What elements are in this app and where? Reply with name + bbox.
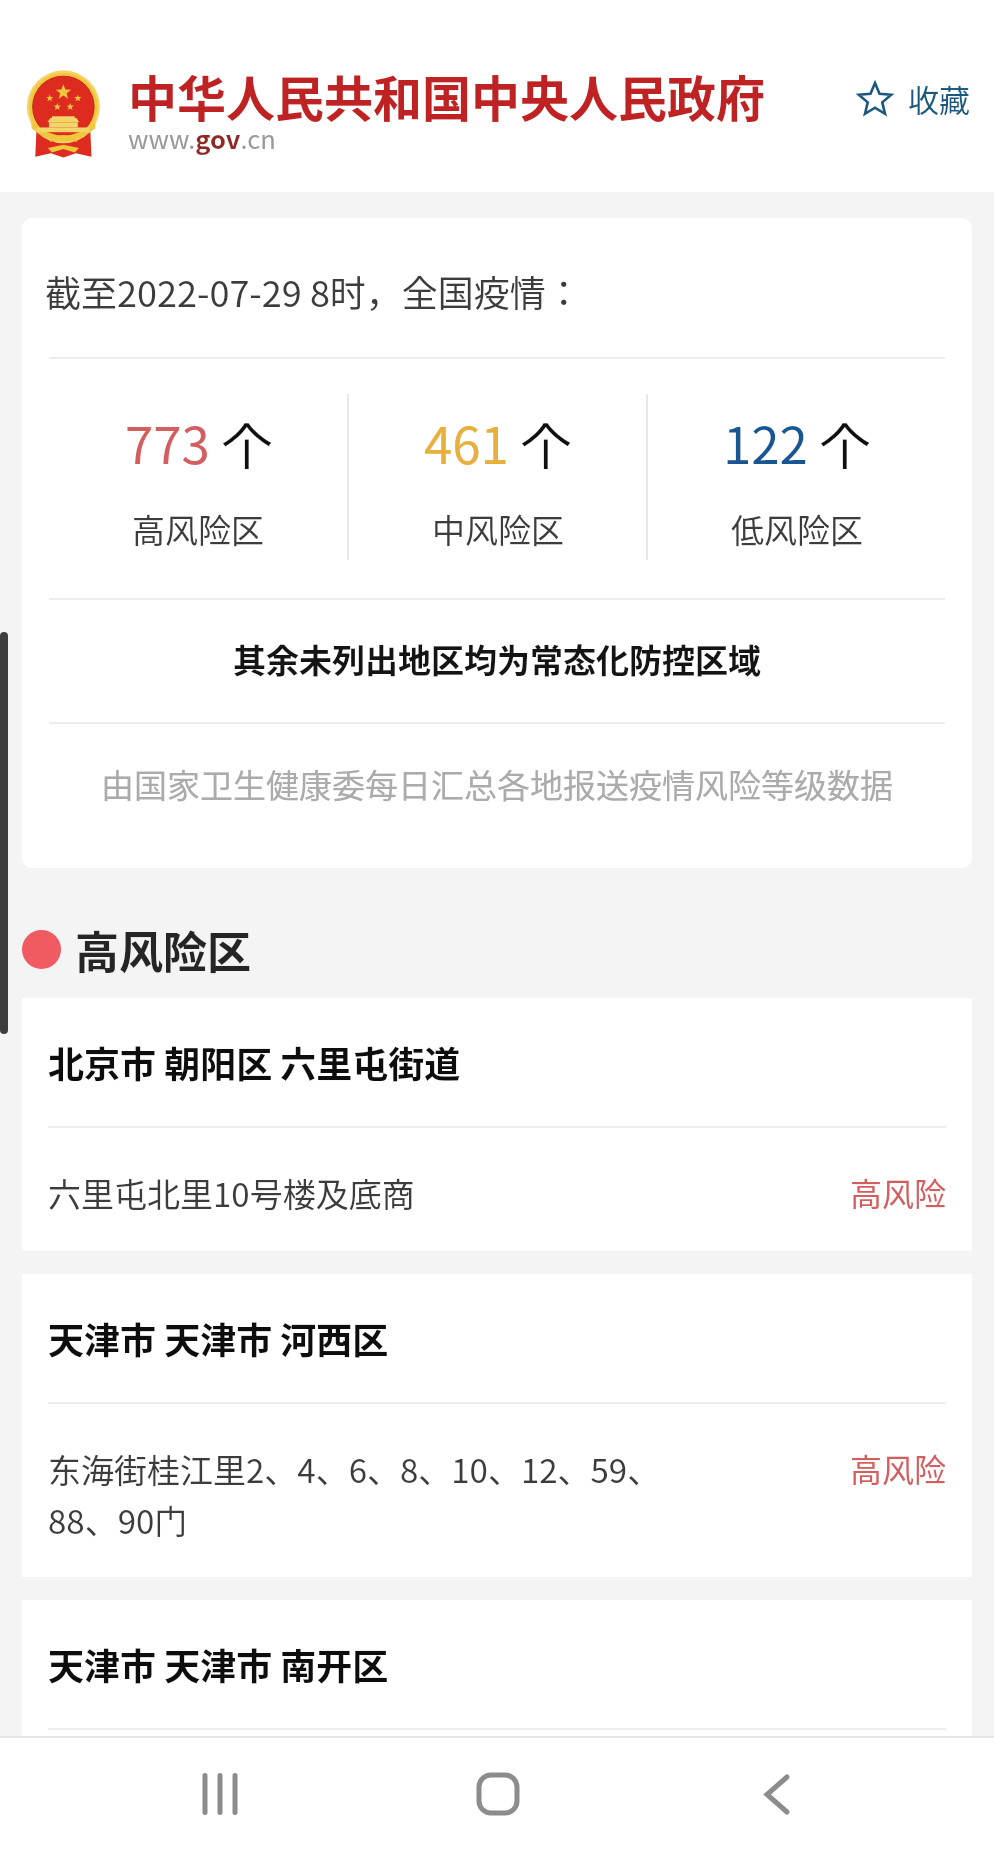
staticText: 高风险 — [850, 1445, 947, 1491]
staticText: 天津市 天津市 南开区 — [48, 1638, 389, 1690]
staticText: 高风险区 — [75, 918, 251, 982]
staticText: 由国家卫生健康委每日汇总各地报送疫情风险等级数据 — [101, 760, 893, 808]
staticText: 截至2022-07-29 8时，全国疫情： — [45, 265, 582, 317]
staticText: 461 — [424, 405, 509, 479]
button[interactable]: 北京市 朝阳区 六里屯街道 — [22, 998, 972, 1251]
button[interactable]: 国徽 gov.cn home — [25, 72, 101, 158]
staticText: 个 — [222, 407, 272, 479]
staticText: 773 — [125, 405, 210, 479]
button[interactable]: 收藏 — [858, 66, 970, 131]
staticText: www.gov.cn — [128, 119, 276, 156]
staticText: 中风险区 — [432, 505, 564, 553]
staticText: 122 — [723, 405, 808, 479]
button[interactable]: Recent apps — [160, 1765, 280, 1823]
staticText: 其余未列出地区均为常态化防控区域 — [233, 635, 761, 683]
staticText: 收藏 — [908, 76, 970, 121]
staticText: 东海街桂江里2、4、6、8、10、12、59、88、90门 — [48, 1445, 675, 1543]
staticText: 高风险区 — [132, 505, 264, 553]
staticText: 低风险区 — [731, 505, 863, 553]
staticText: 个 — [820, 407, 870, 479]
staticText: 个 — [521, 407, 571, 479]
button[interactable]: Back — [717, 1765, 837, 1823]
button[interactable]: 天津市 天津市 南开区 — [22, 1600, 972, 1736]
button[interactable]: Home — [438, 1765, 558, 1823]
staticText: 北京市 朝阳区 六里屯街道 — [48, 1036, 461, 1088]
staticText: 天津市 天津市 河西区 — [48, 1312, 389, 1364]
button[interactable]: 中华人民共和国中央人民政府 — [128, 42, 766, 150]
staticText: 中华人民共和国中央人民政府 — [128, 60, 766, 131]
staticText: 六里屯北里10号楼及底商 — [48, 1169, 675, 1217]
staticText: 高风险 — [850, 1169, 947, 1215]
button[interactable]: 天津市 天津市 河西区 — [22, 1274, 972, 1577]
